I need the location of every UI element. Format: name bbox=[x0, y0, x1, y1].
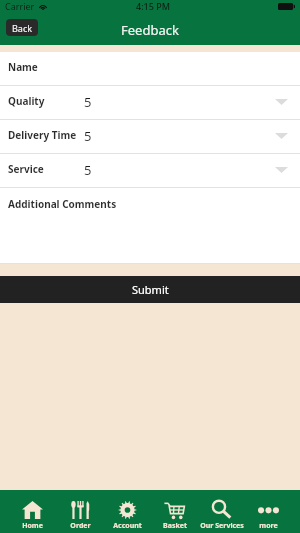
staticText: Our Services bbox=[200, 521, 244, 531]
staticText: Basket bbox=[163, 521, 187, 531]
staticText: Home bbox=[22, 521, 43, 531]
staticText: Submit bbox=[132, 282, 169, 297]
button[interactable]: Back bbox=[6, 19, 38, 36]
button[interactable]: Service bbox=[0, 154, 300, 187]
button[interactable]: more bbox=[245, 490, 292, 533]
staticText: Order bbox=[70, 521, 91, 531]
staticText: 5 bbox=[84, 161, 92, 179]
button[interactable]: Delivery Time bbox=[0, 120, 300, 153]
staticText: 5 bbox=[84, 93, 92, 111]
staticText: Service bbox=[8, 162, 44, 176]
button[interactable]: Quality bbox=[0, 86, 300, 119]
button[interactable]: Our Services bbox=[198, 490, 245, 533]
staticText: more bbox=[259, 521, 278, 531]
button[interactable]: Additional Comments bbox=[0, 188, 300, 223]
button[interactable]: Home bbox=[8, 490, 56, 533]
staticText: 4:15 PM bbox=[136, 0, 170, 12]
button[interactable]: Name bbox=[0, 52, 300, 85]
button[interactable]: Account bbox=[104, 490, 151, 533]
staticText: Account bbox=[113, 521, 142, 531]
button[interactable]: Submit bbox=[0, 276, 300, 303]
button[interactable]: Order bbox=[56, 490, 104, 533]
staticText: Name bbox=[8, 60, 38, 74]
staticText: Delivery Time bbox=[8, 128, 77, 142]
staticText: Additional Comments bbox=[8, 197, 117, 211]
staticText: Back bbox=[12, 22, 33, 34]
staticText: Carrier bbox=[5, 0, 35, 12]
staticText: 5 bbox=[84, 127, 92, 145]
staticText: Feedback bbox=[121, 21, 179, 39]
staticText: Quality bbox=[8, 94, 45, 108]
button[interactable]: Basket bbox=[151, 490, 198, 533]
